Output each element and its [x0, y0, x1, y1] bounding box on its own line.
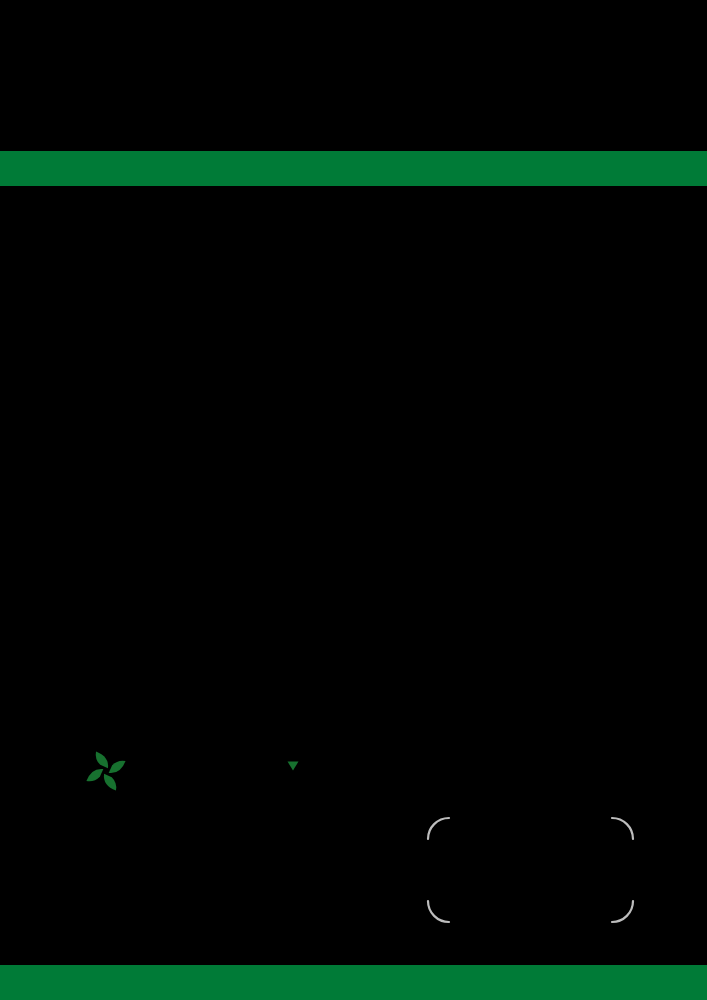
button[interactable]: Expand [283, 756, 303, 776]
button[interactable]: Scan frame [420, 810, 642, 930]
button[interactable]: Logo [82, 747, 130, 795]
